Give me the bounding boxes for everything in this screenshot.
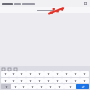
button[interactable] [17, 78, 26, 83]
button[interactable]: Keyboard settings [1, 67, 5, 71]
button[interactable] [71, 78, 80, 83]
button[interactable]: Enter [76, 84, 89, 89]
button[interactable] [17, 71, 26, 77]
button[interactable]: GIF [7, 67, 11, 71]
button[interactable] [1, 78, 9, 83]
button[interactable] [64, 84, 76, 89]
button[interactable] [44, 71, 53, 77]
button[interactable] [62, 71, 71, 77]
button[interactable] [35, 78, 44, 83]
button[interactable] [53, 78, 62, 83]
button[interactable] [80, 78, 89, 83]
button[interactable] [46, 84, 55, 89]
button[interactable] [26, 78, 35, 83]
button[interactable] [71, 71, 80, 77]
button[interactable] [9, 78, 17, 83]
button[interactable] [80, 71, 89, 77]
button[interactable] [55, 84, 64, 89]
button[interactable] [11, 84, 19, 89]
button[interactable] [44, 78, 53, 83]
button[interactable]: Menu [83, 0, 88, 7]
button[interactable] [53, 71, 62, 77]
button[interactable] [9, 71, 17, 77]
button[interactable] [1, 84, 11, 89]
button[interactable] [37, 84, 46, 89]
button[interactable] [28, 84, 37, 89]
button[interactable] [62, 78, 71, 83]
button[interactable]: More [13, 67, 17, 71]
button[interactable] [2, 0, 83, 7]
button[interactable] [26, 71, 35, 77]
button[interactable] [1, 71, 9, 77]
button[interactable] [35, 71, 44, 77]
button[interactable] [19, 84, 28, 89]
